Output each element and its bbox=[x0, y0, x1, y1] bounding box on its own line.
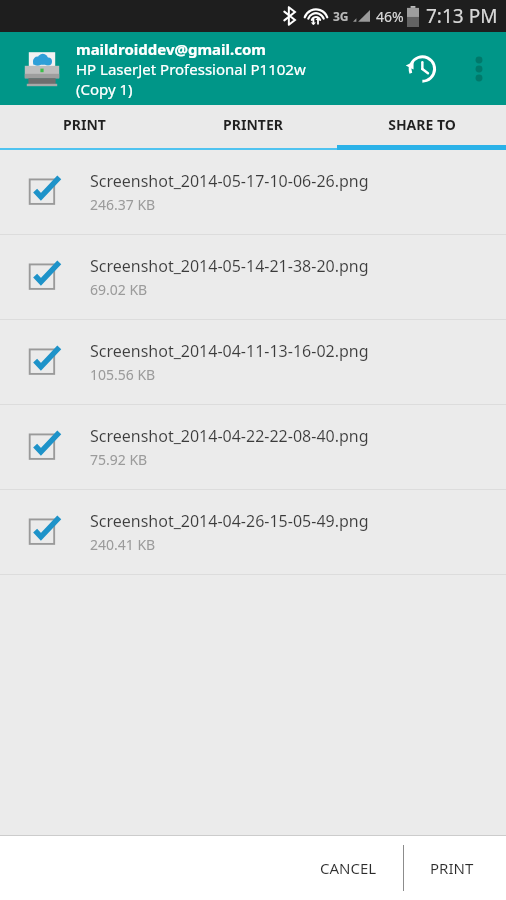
button[interactable]: PRINTER bbox=[168, 105, 337, 150]
button[interactable]: History bbox=[390, 38, 452, 100]
staticText: 46% bbox=[376, 7, 404, 26]
staticText: Screenshot_2014-05-14-21-38-20.png bbox=[90, 255, 369, 277]
button[interactable]: Screenshot_2014-04-11-13-16-02.png bbox=[0, 320, 506, 404]
staticText: 105.56 KB bbox=[90, 365, 156, 384]
staticText: Screenshot_2014-04-11-13-16-02.png bbox=[90, 340, 369, 362]
button[interactable]: CANCEL bbox=[294, 836, 403, 900]
staticText: SHARE TO bbox=[388, 115, 456, 134]
staticText: Screenshot_2014-04-22-22-08-40.png bbox=[90, 425, 369, 447]
staticText: Screenshot_2014-05-17-10-06-26.png bbox=[90, 170, 369, 192]
staticText: Screenshot_2014-04-26-15-05-49.png bbox=[90, 510, 369, 532]
staticText: PRINT bbox=[63, 115, 106, 134]
staticText: HP LaserJet Professional P1102w bbox=[76, 59, 306, 79]
staticText: PRINTER bbox=[223, 115, 283, 134]
staticText: CANCEL bbox=[320, 858, 377, 878]
button[interactable]: Screenshot_2014-04-22-22-08-40.png bbox=[0, 405, 506, 489]
staticText: 246.37 KB bbox=[90, 195, 156, 214]
staticText: (Copy 1) bbox=[76, 79, 133, 99]
staticText: PRINT bbox=[430, 858, 474, 878]
button[interactable]: PRINT bbox=[404, 836, 500, 900]
staticText: 3G bbox=[333, 8, 349, 24]
staticText: 7:13 PM bbox=[426, 3, 498, 29]
button[interactable]: SHARE TO bbox=[337, 105, 506, 150]
staticText: 75.92 KB bbox=[90, 450, 148, 469]
staticText: 69.02 KB bbox=[90, 280, 148, 299]
button[interactable]: Screenshot_2014-05-17-10-06-26.png bbox=[0, 150, 506, 234]
button[interactable]: PRINT bbox=[0, 105, 168, 150]
staticText: maildroiddev@gmail.com bbox=[76, 39, 266, 59]
staticText: 240.41 KB bbox=[90, 535, 156, 554]
button[interactable]: Screenshot_2014-05-14-21-38-20.png bbox=[0, 235, 506, 319]
button[interactable]: More options bbox=[452, 42, 506, 96]
button[interactable]: Screenshot_2014-04-26-15-05-49.png bbox=[0, 490, 506, 574]
